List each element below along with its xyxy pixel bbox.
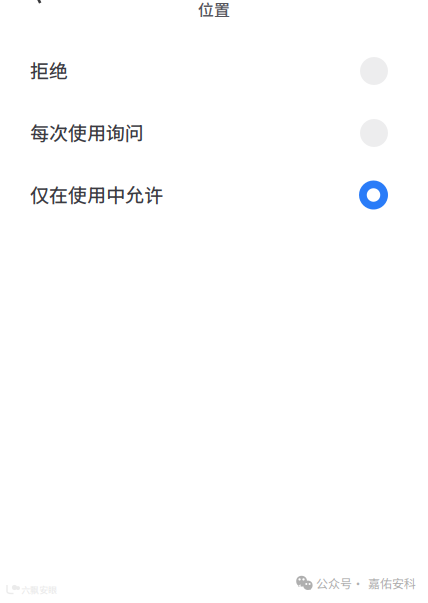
button[interactable]: 每次使用询问 [0, 102, 428, 164]
staticText: 拒绝 [30, 56, 68, 84]
staticText: 每次使用询问 [30, 118, 144, 146]
button[interactable]: 仅在使用中允许 [0, 164, 428, 226]
staticText: 六飘安眼 [21, 583, 57, 596]
staticText: 嘉佑安科 [368, 574, 416, 592]
button[interactable]: 拒绝 [0, 40, 428, 102]
staticText: 位置 [198, 0, 230, 21]
staticText: · [352, 574, 364, 592]
staticText: 仅在使用中允许 [30, 180, 163, 208]
staticText: 公众号 [316, 574, 352, 592]
button[interactable]: Back [0, 0, 54, 4]
